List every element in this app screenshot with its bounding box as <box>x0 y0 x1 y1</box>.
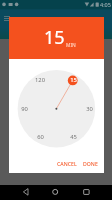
button[interactable]: DONE <box>80 158 101 169</box>
button[interactable]: 120 <box>31 75 49 85</box>
staticText: 4:05 <box>100 1 111 8</box>
button[interactable]: Back <box>17 185 35 200</box>
staticText: CANCEL <box>57 160 77 167</box>
button[interactable]: Open navigation drawer <box>0 9 13 28</box>
staticText: 90 <box>21 105 28 113</box>
staticText: DONE <box>83 160 98 167</box>
button[interactable]: Home <box>47 185 65 200</box>
button[interactable]: 90 <box>15 104 33 114</box>
staticText: 60 <box>37 133 44 141</box>
button[interactable]: 15 <box>44 25 65 50</box>
staticText: 15 <box>70 76 77 84</box>
staticText: 120 <box>35 76 45 84</box>
button[interactable]: 15 <box>64 75 82 85</box>
button[interactable]: CANCEL <box>54 158 80 169</box>
staticText: MIN <box>66 42 76 49</box>
button[interactable]: 60 <box>31 132 49 142</box>
button[interactable]: 30 <box>80 104 98 114</box>
staticText: 30 <box>86 105 93 113</box>
button[interactable]: Recent apps <box>78 185 96 200</box>
staticText: FM Radio <box>13 14 47 24</box>
staticText: 45 <box>70 133 77 141</box>
button[interactable]: 45 <box>64 132 82 142</box>
